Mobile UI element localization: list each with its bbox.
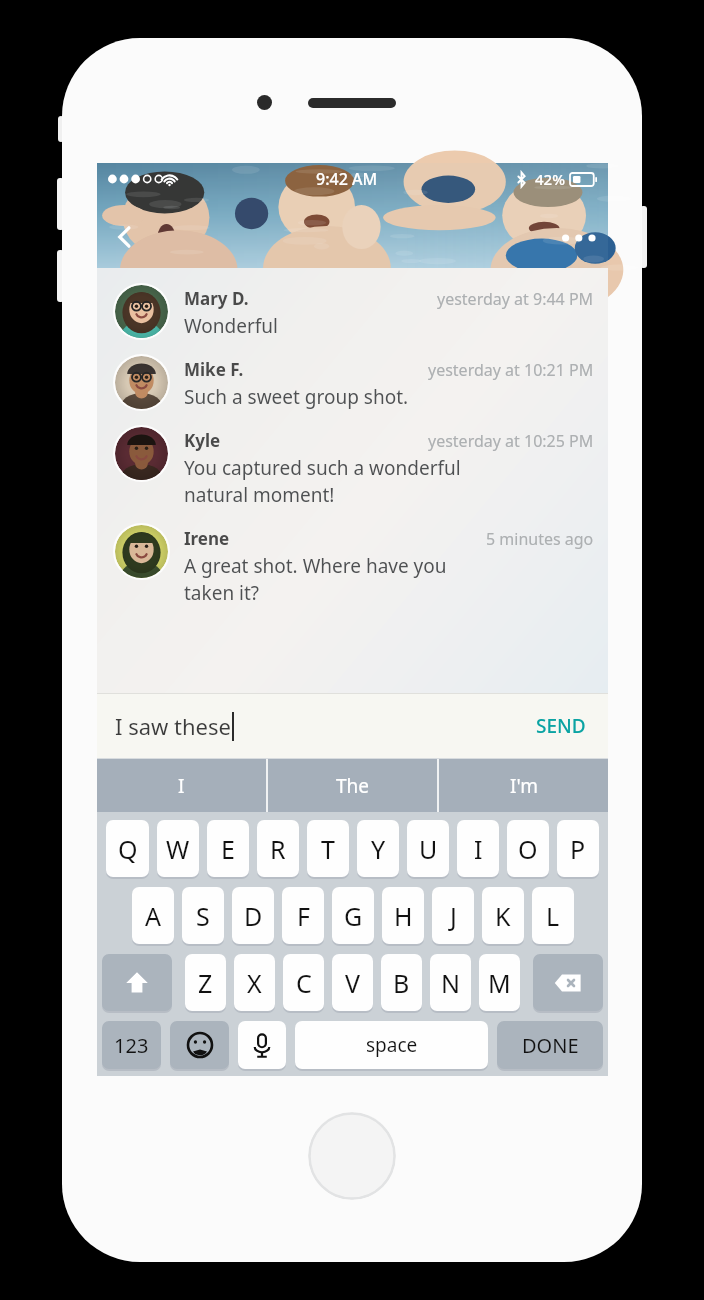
staticText: G [344,899,363,933]
staticText: taken it? [184,580,260,606]
button[interactable]: E [207,820,249,877]
button[interactable]: A [132,887,174,944]
button[interactable]: space [295,1021,488,1069]
staticText: 9:42 AM [316,168,378,190]
staticText: I'm [510,773,538,799]
button[interactable]: Q [106,820,149,877]
button[interactable]: M [479,954,520,1011]
button[interactable]: P [557,820,599,877]
button[interactable]: V [332,954,373,1011]
button[interactable]: C [283,954,324,1011]
other: Voice input [238,1021,286,1069]
button[interactable]: I [457,820,499,877]
button[interactable]: DONE [497,1021,603,1069]
staticText: A [145,899,161,933]
button[interactable]: SEND [532,705,590,747]
button[interactable]: The [268,759,437,812]
button[interactable]: Mary D. [97,276,608,347]
staticText: Q [118,832,138,866]
staticText: P [570,832,586,866]
staticText: I saw these [115,711,231,741]
button[interactable]: N [430,954,471,1011]
button[interactable]: U [407,820,449,877]
staticText: A great shot. Where have you [184,553,447,579]
button[interactable]: 123 [102,1021,161,1069]
button[interactable]: W [157,820,199,877]
staticText: I [178,773,185,799]
staticText: J [450,899,457,933]
staticText: C [296,966,312,1000]
staticText: Z [198,966,213,1000]
staticText: The [336,773,370,799]
button[interactable]: K [482,887,524,944]
staticText: Irene [184,527,230,550]
staticText: Such a sweet group shot. [184,384,409,410]
button[interactable] [170,1021,229,1069]
button[interactable] [533,954,603,1011]
staticText: I [474,832,483,866]
button[interactable]: S [182,887,224,944]
staticText: R [270,832,286,866]
staticText: S [196,899,210,933]
staticText: Y [371,832,386,866]
staticText: N [441,966,461,1000]
button[interactable]: Kyle [97,418,608,516]
staticText: T [321,832,335,866]
staticText: 5 minutes ago [486,528,594,550]
button[interactable] [102,954,172,1011]
other: Shift [102,954,172,1011]
button[interactable]: O [507,820,549,877]
button[interactable]: Mike F. [97,347,608,418]
button[interactable]: Back [103,215,147,259]
staticText: Kyle [184,429,221,452]
button[interactable]: R [257,820,299,877]
staticText: B [393,966,410,1000]
staticText: K [495,899,511,933]
staticText: SEND [536,713,586,739]
staticText: yesterday at 10:21 PM [428,359,594,381]
staticText: M [488,966,511,1000]
button[interactable]: I [97,759,266,812]
staticText: F [297,899,310,933]
button[interactable]: L [532,887,574,944]
staticText: E [221,832,235,866]
staticText: 123 [114,1032,149,1059]
button[interactable]: Z [185,954,226,1011]
button[interactable]: H [382,887,424,944]
button[interactable]: Irene [97,516,608,614]
button[interactable]: D [232,887,274,944]
button[interactable]: X [234,954,275,1011]
other: Backspace [533,954,603,1011]
staticText: W [166,832,190,866]
staticText: Mike F. [184,358,244,381]
button[interactable]: Y [357,820,399,877]
staticText: U [419,832,438,866]
staticText: Wonderful [184,313,278,339]
staticText: Mary D. [184,287,249,310]
button[interactable]: I saw these [115,711,532,741]
other: Emoji [170,1021,229,1069]
button[interactable]: I'm [439,759,608,812]
button[interactable]: J [432,887,474,944]
staticText: 42% [535,169,565,189]
staticText: H [394,899,413,933]
button[interactable]: G [332,887,374,944]
staticText: X [247,966,262,1000]
staticText: D [244,899,263,933]
button[interactable]: B [381,954,422,1011]
button[interactable]: T [307,820,349,877]
staticText: yesterday at 9:44 PM [437,288,594,310]
button[interactable]: F [282,887,324,944]
staticText: space [366,1032,418,1058]
staticText: L [546,899,560,933]
button[interactable] [238,1021,286,1069]
staticText: V [345,966,361,1000]
staticText: natural moment! [184,482,335,508]
staticText: yesterday at 10:25 PM [428,430,594,452]
staticText: O [518,832,538,866]
staticText: DONE [522,1032,579,1059]
button[interactable]: More options [554,215,600,261]
staticText: You captured such a wonderful [184,455,461,481]
